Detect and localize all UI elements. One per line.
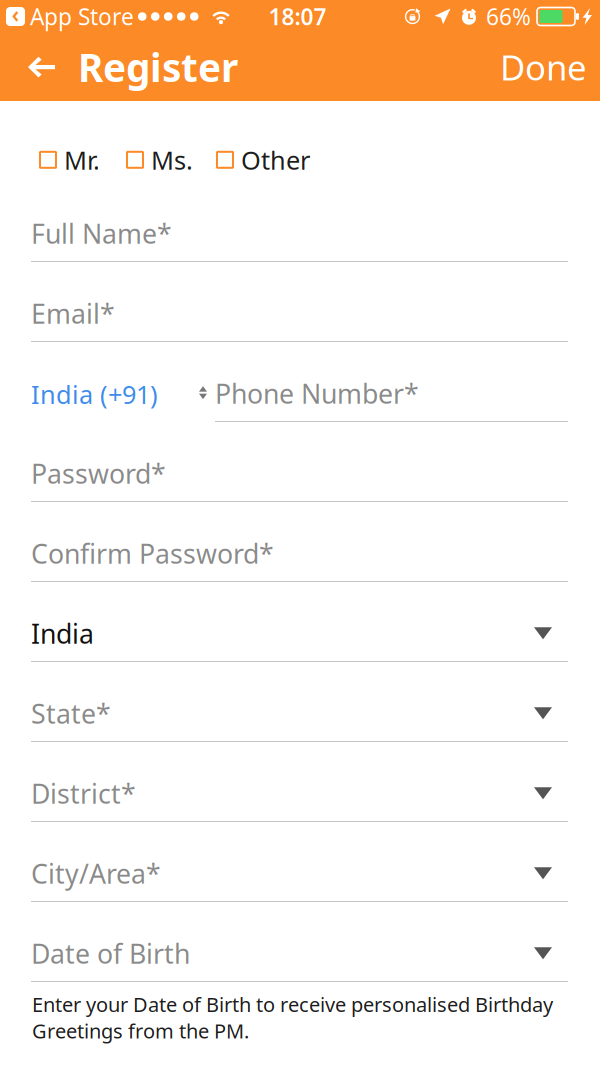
button[interactable]: Full Name* — [0, 182, 600, 262]
staticText: India (+91) — [31, 377, 158, 411]
button[interactable]: District* — [0, 742, 600, 822]
staticText: Confirm Password* — [31, 536, 274, 571]
staticText: App Store — [30, 1, 134, 31]
staticText: Password* — [31, 456, 166, 491]
button[interactable]: State* — [0, 662, 600, 742]
staticText: State* — [31, 696, 111, 731]
staticText: 66% — [486, 1, 531, 31]
button[interactable]: Email* — [0, 262, 600, 342]
button[interactable]: India (+91) — [31, 342, 215, 422]
staticText: Email* — [31, 296, 115, 331]
staticText: Ms. — [151, 143, 193, 177]
button[interactable]: Phone Number* — [215, 342, 568, 422]
button[interactable]: Date of Birth — [0, 902, 600, 982]
staticText: District* — [31, 776, 136, 811]
staticText: Greetings from the PM. — [32, 1018, 249, 1044]
staticText: Date of Birth — [31, 936, 190, 971]
button[interactable]: Confirm Password* — [0, 502, 600, 582]
staticText: Done — [500, 44, 587, 90]
button[interactable]: Back — [5, 33, 78, 101]
button[interactable]: Password* — [0, 422, 600, 502]
button[interactable]: India — [0, 582, 600, 662]
staticText: City/Area* — [31, 856, 161, 891]
staticText: Other — [241, 143, 310, 177]
button[interactable]: Other — [217, 143, 310, 177]
staticText: India — [31, 616, 94, 651]
staticText: Phone Number* — [215, 376, 419, 411]
button[interactable]: Done — [500, 44, 587, 90]
staticText: Full Name* — [31, 216, 172, 251]
staticText: Mr. — [64, 143, 100, 177]
button[interactable]: City/Area* — [0, 822, 600, 902]
staticText: Register — [78, 41, 238, 93]
button[interactable]: Ms. — [127, 143, 193, 177]
staticText: 18:07 — [268, 1, 326, 31]
staticText: Enter your Date of Birth to receive pers… — [32, 991, 553, 1018]
button[interactable]: Mr. — [40, 143, 100, 177]
